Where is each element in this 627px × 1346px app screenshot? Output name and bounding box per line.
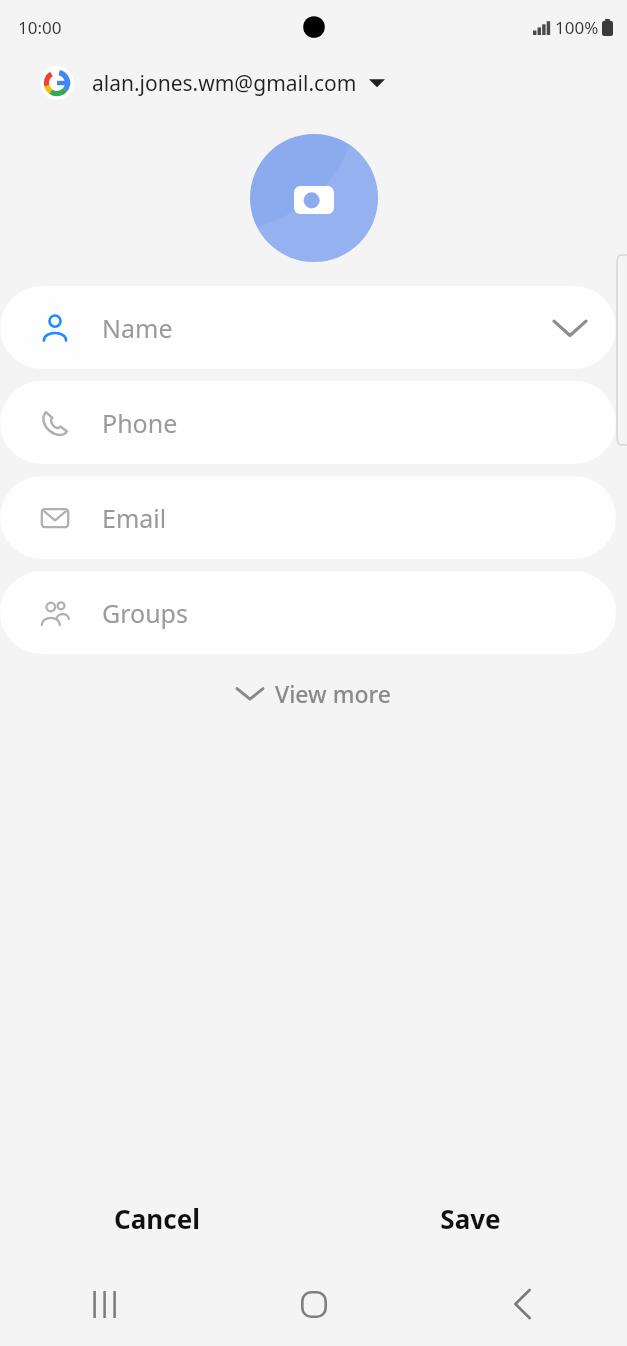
staticText: Save: [440, 1201, 501, 1236]
button[interactable]: View more: [223, 670, 405, 717]
button[interactable]: alan.jones.wm@gmail.com: [0, 54, 627, 112]
button[interactable]: Add photo: [250, 134, 378, 262]
staticText: View more: [275, 678, 391, 709]
button[interactable]: Email: [0, 476, 616, 559]
button[interactable]: Home: [209, 1276, 418, 1332]
button[interactable]: Groups: [0, 571, 616, 654]
button[interactable]: Save: [313, 1188, 627, 1248]
staticText: Groups: [102, 596, 188, 630]
button[interactable]: Recents: [0, 1276, 209, 1332]
button[interactable]: Back: [418, 1276, 627, 1332]
staticText: Email: [102, 501, 167, 535]
staticText: 100%: [555, 16, 599, 39]
staticText: Phone: [102, 406, 178, 440]
button[interactable]: Phone: [0, 381, 616, 464]
staticText: Cancel: [114, 1201, 200, 1236]
button[interactable]: Cancel: [0, 1188, 313, 1248]
staticText: alan.jones.wm@gmail.com: [92, 69, 357, 98]
button[interactable]: Name: [0, 286, 616, 369]
staticText: Name: [102, 311, 173, 345]
staticText: 10:00: [18, 16, 62, 39]
